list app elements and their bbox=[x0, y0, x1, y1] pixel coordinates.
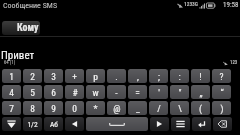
staticText: 64 (1) bbox=[4, 60, 16, 66]
staticText: Аб bbox=[50, 120, 58, 129]
button[interactable]: Move cursor right bbox=[150, 117, 169, 131]
staticText: ) bbox=[220, 103, 224, 114]
button[interactable]: Space bbox=[86, 117, 148, 131]
button[interactable]: 3 bbox=[44, 69, 63, 83]
staticText: 0 bbox=[72, 103, 77, 114]
button[interactable]: “ bbox=[212, 85, 231, 99]
button[interactable]: 0 bbox=[65, 101, 84, 115]
button[interactable]: , bbox=[128, 69, 147, 83]
button[interactable]: Кому bbox=[2, 21, 40, 35]
staticText: : bbox=[178, 71, 181, 82]
staticText: 2 bbox=[30, 71, 35, 82]
staticText: 6 bbox=[51, 87, 56, 98]
staticText: * bbox=[93, 103, 98, 114]
staticText: # bbox=[72, 87, 78, 98]
button[interactable]: Move cursor left bbox=[65, 117, 84, 131]
button[interactable]: ( bbox=[191, 101, 210, 115]
staticText: ! bbox=[199, 71, 202, 82]
button[interactable]: „ bbox=[191, 85, 210, 99]
staticText: @ bbox=[113, 103, 121, 114]
staticText: Привет bbox=[1, 49, 35, 62]
staticText: „ bbox=[199, 87, 203, 98]
staticText: 9 bbox=[51, 103, 56, 114]
staticText: 19:58 bbox=[223, 1, 239, 9]
staticText: \ bbox=[178, 103, 182, 114]
staticText: - bbox=[115, 87, 118, 98]
button[interactable]: ? bbox=[212, 69, 231, 83]
staticText: 7 bbox=[9, 103, 14, 114]
button[interactable]: 2 bbox=[23, 69, 42, 83]
staticText: 8 bbox=[30, 103, 35, 114]
button[interactable]: : bbox=[170, 69, 189, 83]
staticText: = bbox=[135, 87, 140, 98]
staticText: 1/2 bbox=[27, 120, 38, 129]
button[interactable]: Close keyboard bbox=[2, 117, 21, 131]
staticText: 4 bbox=[9, 87, 14, 98]
button[interactable]: 6 bbox=[44, 85, 63, 99]
button[interactable]: 8 bbox=[23, 101, 42, 115]
staticText: w bbox=[92, 87, 99, 98]
staticText: 5 bbox=[30, 87, 35, 98]
button[interactable]: = bbox=[128, 85, 147, 99]
staticText: Сообщение SMS bbox=[3, 1, 58, 10]
button[interactable]: Keyboard page 1 of 2 bbox=[23, 117, 42, 131]
button[interactable]: 5 bbox=[23, 85, 42, 99]
staticText: _ bbox=[136, 103, 140, 114]
staticText: Кому bbox=[17, 22, 39, 34]
button[interactable]: 9 bbox=[44, 101, 63, 115]
button[interactable]: # bbox=[65, 85, 84, 99]
staticText: ; bbox=[158, 71, 160, 82]
button[interactable]: ) bbox=[212, 101, 231, 115]
staticText: р bbox=[93, 71, 98, 82]
button[interactable]: ' bbox=[149, 85, 168, 99]
staticText: 3 bbox=[51, 71, 56, 82]
button[interactable]: w bbox=[86, 85, 105, 99]
button[interactable]: Enter bbox=[192, 117, 211, 131]
button[interactable]: - bbox=[107, 85, 126, 99]
button[interactable]: ! bbox=[191, 69, 210, 83]
button[interactable]: Backspace bbox=[213, 117, 232, 131]
button[interactable]: " bbox=[170, 85, 189, 99]
button[interactable]: ; bbox=[149, 69, 168, 83]
button[interactable]: / bbox=[149, 101, 168, 115]
staticText: " bbox=[178, 87, 182, 98]
staticText: 123 bbox=[184, 1, 193, 7]
button[interactable]: \ bbox=[170, 101, 189, 115]
staticText: ? bbox=[219, 71, 224, 82]
button[interactable]: 7 bbox=[2, 101, 21, 115]
staticText: ' bbox=[158, 87, 160, 98]
staticText: / bbox=[157, 103, 161, 114]
button[interactable]: 1 bbox=[2, 69, 21, 83]
button[interactable]: р bbox=[86, 69, 105, 83]
staticText: 3G bbox=[192, 1, 198, 7]
button[interactable]: Change language bbox=[44, 117, 63, 131]
staticText: ( bbox=[199, 103, 202, 114]
staticText: 1 bbox=[9, 71, 14, 82]
button[interactable]: 4 bbox=[2, 85, 21, 99]
button[interactable]: @ bbox=[107, 101, 126, 115]
staticText: + bbox=[72, 71, 77, 82]
staticText: . bbox=[115, 71, 118, 82]
staticText: 123 bbox=[230, 60, 238, 66]
button[interactable]: * bbox=[86, 101, 105, 115]
button[interactable]: + bbox=[65, 69, 84, 83]
staticText: “ bbox=[220, 87, 224, 98]
button[interactable]: Menu bbox=[171, 117, 190, 131]
button[interactable]: . bbox=[107, 69, 126, 83]
button[interactable]: _ bbox=[128, 101, 147, 115]
staticText: , bbox=[137, 71, 139, 82]
